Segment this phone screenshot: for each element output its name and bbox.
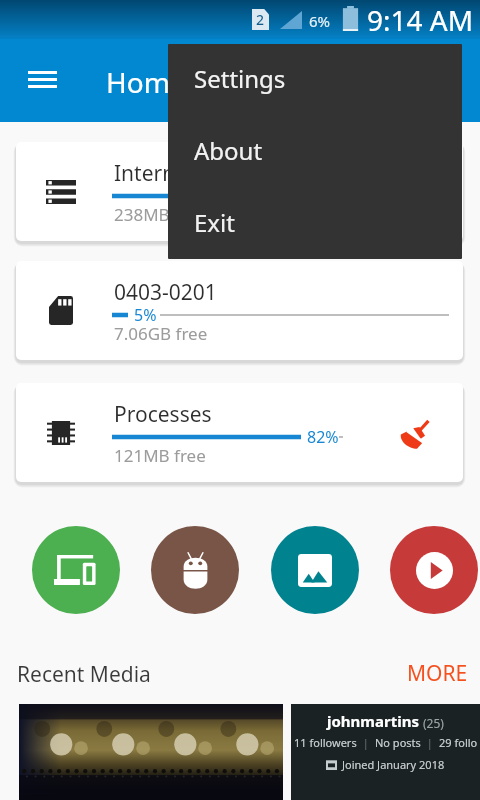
button[interactable]: Settings: [168, 44, 462, 114]
staticText: Home: [106, 63, 186, 101]
staticText: 29 follo: [439, 735, 478, 750]
button[interactable]: Videos: [390, 526, 478, 614]
button[interactable]: MORE: [396, 658, 478, 688]
button[interactable]: Internal: [16, 142, 463, 241]
button[interactable]: Devices: [32, 526, 120, 614]
staticText: 9:14 AM: [367, 1, 474, 39]
button[interactable]: Processes: [16, 383, 463, 482]
staticText: Processes: [114, 400, 212, 429]
staticText: 238MB free: [114, 203, 206, 226]
button[interactable]: Exit: [168, 186, 462, 258]
staticText: Exit: [194, 206, 235, 239]
staticText: 2: [256, 10, 265, 29]
staticText: MORE: [407, 659, 468, 688]
staticText: Recent Media: [17, 660, 151, 689]
staticText: |: [421, 735, 439, 750]
staticText: Joined January 2018: [342, 757, 445, 772]
staticText: 121MB free: [114, 444, 206, 467]
button[interactable]: Images: [271, 526, 359, 614]
staticText: No posts: [375, 735, 421, 750]
staticText: 7.06GB free: [114, 322, 208, 345]
button[interactable]: About: [168, 114, 462, 186]
staticText: About: [194, 134, 263, 167]
staticText: 6%: [309, 11, 331, 31]
button[interactable]: Recent media photo: [19, 704, 283, 800]
staticText: 11 followers: [294, 735, 357, 750]
staticText: |: [357, 735, 375, 750]
staticText: (25): [423, 715, 444, 731]
staticText: 0403-0201: [114, 278, 217, 307]
button[interactable]: Apps: [151, 526, 239, 614]
staticText: Internal: [114, 159, 193, 188]
staticText: 5%: [134, 304, 157, 326]
button[interactable]: 0403-0201: [16, 261, 463, 360]
button[interactable]: johnmartins: [291, 704, 480, 800]
staticText: johnmartins: [327, 711, 419, 731]
button[interactable]: Open navigation drawer: [20, 57, 64, 101]
staticText: 82%: [307, 426, 339, 448]
staticText: Settings: [194, 62, 286, 95]
button[interactable]: Clean: [390, 410, 438, 458]
